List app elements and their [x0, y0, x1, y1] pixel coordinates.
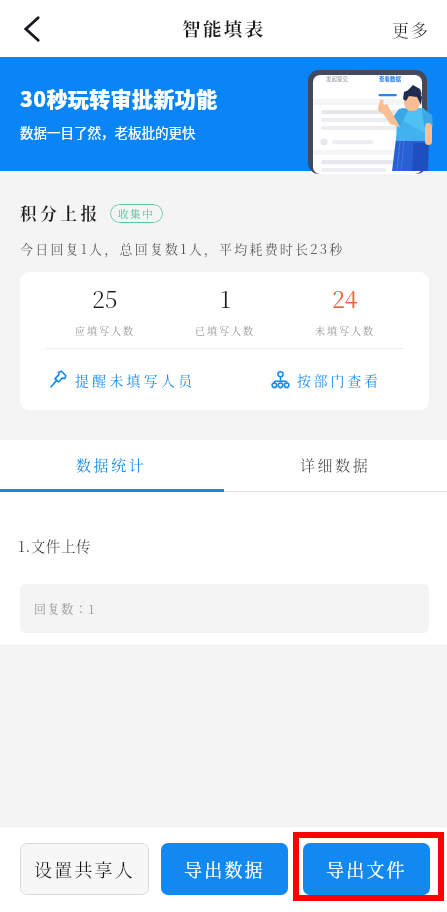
staticText: 收集中 — [118, 206, 155, 221]
staticText: 按部门查看 — [297, 370, 381, 390]
staticText: 导出文件 — [326, 856, 407, 882]
button[interactable]: 数据统计 — [0, 440, 223, 489]
staticText: 查看数据 — [379, 75, 402, 83]
staticText: 设置共享人 — [34, 856, 135, 882]
button[interactable]: 设置共享人 — [20, 843, 149, 895]
staticText: 发起提交 — [326, 75, 349, 83]
button[interactable]: 30秒玩转审批新功能 — [0, 57, 447, 171]
staticText: 30秒玩转审批新功能 — [20, 83, 218, 113]
button[interactable]: 详细数据 — [223, 440, 447, 489]
staticText: 应填写人数 — [75, 323, 135, 337]
button[interactable]: 按部门查看 — [224, 349, 429, 410]
staticText: 未填写人数 — [315, 323, 375, 337]
staticText: 数据一目了然，老板批的更快 — [20, 122, 196, 142]
staticText: 已填写人数 — [195, 323, 255, 337]
button[interactable]: 提醒未填写人员 — [20, 349, 224, 410]
staticText: 数据统计 — [76, 454, 147, 476]
button[interactable]: 导出数据 — [161, 843, 288, 895]
button[interactable]: Back — [6, 3, 58, 55]
staticText: 今日回复1人，总回复数1人，平均耗费时长23秒 — [20, 239, 345, 258]
staticText: 详细数据 — [300, 454, 371, 476]
staticText: 更多 — [392, 17, 430, 41]
staticText: 24 — [332, 282, 358, 315]
staticText: 1 — [220, 282, 231, 315]
button[interactable]: 导出文件 — [303, 843, 430, 895]
staticText: 智能填表 — [182, 15, 266, 42]
staticText: 积分上报 — [20, 201, 101, 225]
button[interactable]: 更多 — [375, 0, 447, 57]
staticText: 提醒未填写人员 — [75, 370, 196, 390]
staticText: 25 — [92, 282, 118, 315]
staticText: 1.文件上传 — [18, 535, 92, 556]
staticText: 导出数据 — [184, 856, 265, 882]
staticText: 回复数：1 — [34, 600, 96, 617]
